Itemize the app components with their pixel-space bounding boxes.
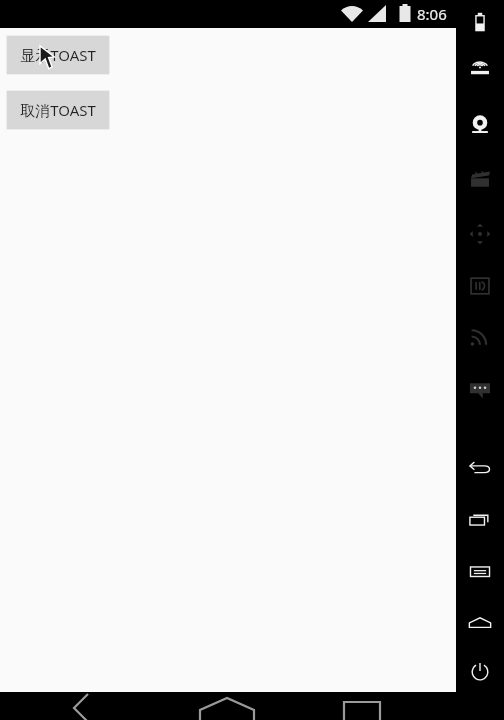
button[interactable]: Emulator control (466, 558, 494, 586)
staticText: 显示TOAST (20, 45, 96, 65)
button[interactable]: Emulator control (466, 112, 494, 140)
staticText: 8:06 (417, 4, 447, 24)
button[interactable]: Emulator control (466, 658, 494, 686)
button[interactable]: Emulator control (466, 58, 494, 86)
button[interactable]: Emulator control (466, 610, 494, 638)
button[interactable]: Emulator control (466, 453, 494, 481)
button[interactable]: 显示TOAST (7, 36, 109, 74)
button[interactable]: Emulator control (466, 166, 494, 194)
button[interactable]: Emulator control (466, 272, 494, 300)
button[interactable]: Emulator control (466, 323, 494, 351)
button[interactable]: Emulator control (466, 220, 494, 248)
button[interactable]: 取消TOAST (7, 91, 109, 129)
button[interactable]: Emulator control (466, 10, 494, 38)
button[interactable]: Emulator control (466, 376, 494, 404)
button[interactable]: Emulator control (466, 506, 494, 534)
staticText: 取消TOAST (20, 100, 96, 120)
